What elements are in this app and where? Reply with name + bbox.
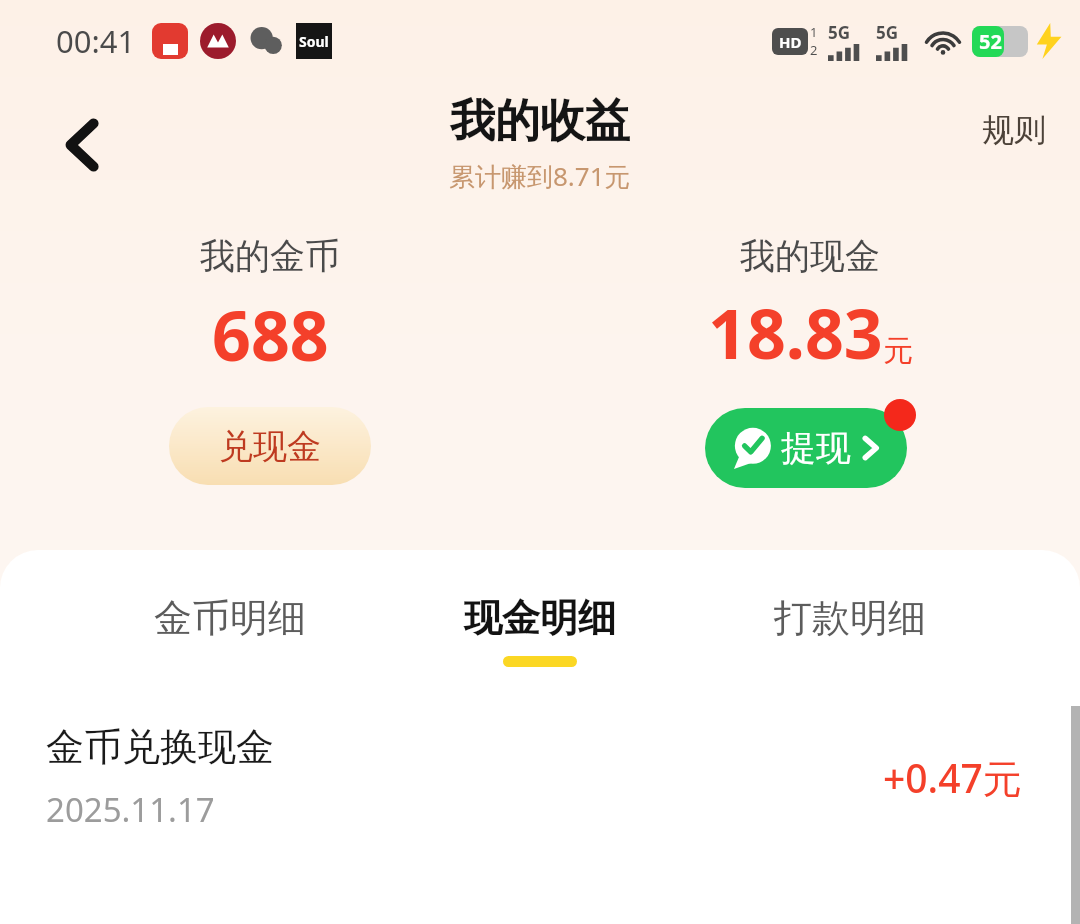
staticText: 规则 bbox=[982, 110, 1046, 150]
staticText: 5G bbox=[876, 21, 899, 44]
button[interactable]: 现金明细 bbox=[460, 592, 620, 669]
staticText: 元 bbox=[883, 332, 913, 370]
button[interactable]: 打款明细 bbox=[770, 592, 930, 669]
button[interactable]: 兑现金 bbox=[169, 407, 371, 485]
staticText: 00:41 bbox=[56, 20, 136, 62]
button[interactable]: 规则 bbox=[972, 102, 1056, 158]
staticText: 5G bbox=[828, 21, 851, 44]
staticText: 累计赚到8.71元 bbox=[449, 158, 631, 194]
staticText: 2025.11.17 bbox=[46, 787, 215, 832]
button[interactable]: 金币兑换现金 bbox=[0, 717, 1080, 838]
staticText: 52 bbox=[979, 28, 1002, 55]
button[interactable]: 提现 bbox=[705, 408, 907, 488]
staticText: 我的现金 bbox=[740, 234, 880, 278]
staticText: 2 bbox=[810, 41, 818, 59]
staticText: 688 bbox=[212, 288, 329, 381]
staticText: 兑现金 bbox=[219, 425, 321, 468]
button[interactable]: 金币明细 bbox=[150, 592, 310, 669]
staticText: 提现 bbox=[781, 426, 851, 470]
staticText: Soul bbox=[299, 32, 329, 51]
staticText: 现金明细 bbox=[464, 594, 616, 642]
staticText: 金币明细 bbox=[154, 594, 306, 642]
staticText: 金币兑换现金 bbox=[46, 723, 274, 771]
button[interactable]: Back bbox=[36, 97, 132, 193]
staticText: 18.83 bbox=[708, 286, 883, 379]
staticText: 1 bbox=[810, 23, 818, 41]
staticText: 我的金币 bbox=[200, 234, 340, 278]
staticText: HD bbox=[779, 32, 802, 52]
staticText: +0.47元 bbox=[883, 751, 1022, 804]
staticText: 打款明细 bbox=[774, 594, 926, 642]
staticText: 我的收益 bbox=[450, 93, 630, 150]
